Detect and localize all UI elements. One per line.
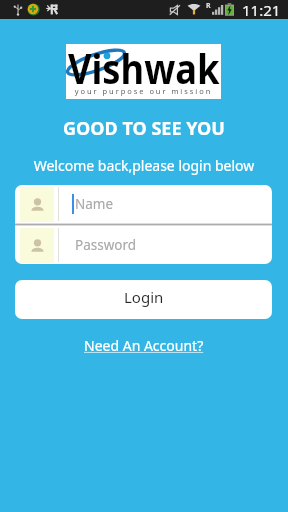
staticText: your purpose our mission — [66, 86, 221, 96]
button[interactable]: Login — [15, 280, 272, 319]
button[interactable]: Name — [15, 185, 272, 223]
staticText: Name — [75, 195, 114, 213]
staticText: Login — [124, 287, 164, 307]
staticText: Password — [75, 236, 137, 254]
staticText: 11:21 — [242, 0, 281, 19]
button[interactable]: Need An Account? — [80, 334, 208, 357]
button[interactable]: Password — [15, 226, 272, 264]
staticText: Vishwak — [68, 39, 220, 94]
staticText: R — [206, 1, 211, 11]
staticText: GOOD TO SEE YOU — [0, 116, 288, 141]
staticText: Welcome back,please login below — [0, 156, 288, 175]
